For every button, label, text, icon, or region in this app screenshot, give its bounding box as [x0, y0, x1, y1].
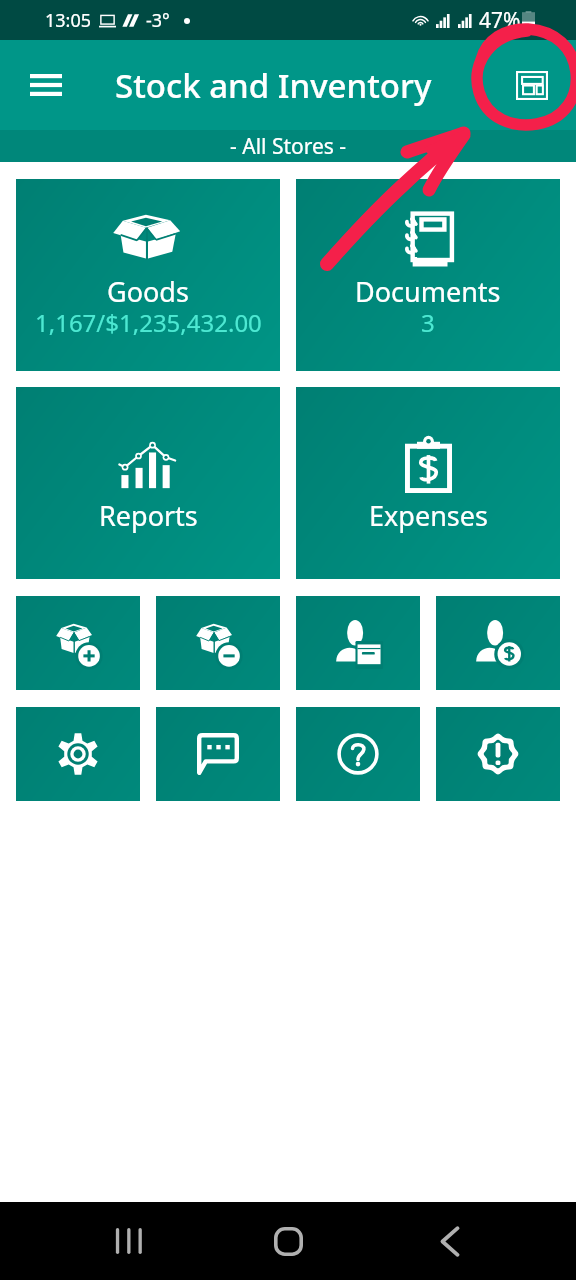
button[interactable]: Back: [418, 1209, 482, 1273]
button[interactable]: Goods: [16, 179, 280, 371]
staticText: -3°: [146, 8, 170, 33]
button[interactable]: Home: [256, 1209, 320, 1273]
staticText: Documents: [355, 273, 501, 310]
staticText: Goods: [107, 273, 189, 310]
staticText: 47%: [479, 6, 521, 35]
button[interactable]: Customer payment: [436, 596, 560, 690]
button[interactable]: Help: [296, 707, 420, 801]
button[interactable]: Recent apps: [97, 1209, 161, 1273]
staticText: 1,167/$1,235,432.00: [35, 306, 262, 339]
button[interactable]: Settings: [16, 707, 140, 801]
staticText: Expenses: [369, 497, 488, 534]
staticText: - All Stores -: [230, 132, 347, 161]
button[interactable]: Add goods: [16, 596, 140, 690]
button[interactable]: Reports: [16, 387, 280, 579]
button[interactable]: Expenses: [296, 387, 560, 579]
button[interactable]: Customer order: [296, 596, 420, 690]
button[interactable]: Open navigation menu: [16, 55, 76, 115]
button[interactable]: Remove goods: [156, 596, 280, 690]
button[interactable]: Documents: [296, 179, 560, 371]
staticText: 13:05: [45, 8, 92, 33]
button[interactable]: - All Stores -: [0, 130, 576, 162]
button[interactable]: Feedback: [156, 707, 280, 801]
staticText: Reports: [99, 497, 198, 534]
button[interactable]: About: [436, 707, 560, 801]
staticText: 3: [421, 306, 435, 339]
button[interactable]: Change layout: [504, 57, 560, 113]
staticText: Stock and Inventory: [115, 63, 432, 108]
